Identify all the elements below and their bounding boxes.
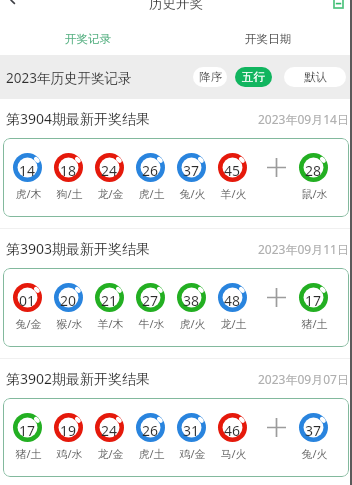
staticText: 46 [224,421,241,440]
button[interactable]: 开奖日期 [176,22,352,55]
staticText: 默认 [304,70,327,84]
staticText: 虎/土 [138,186,165,201]
staticText: 虎/土 [138,446,165,461]
staticText: 马/火 [220,446,247,461]
button[interactable]: Calendar [334,0,343,8]
button[interactable]: 17 [3,398,349,477]
staticText: 38 [183,291,200,310]
button[interactable]: Back [0,0,29,11]
staticText: 龙/金 [97,446,124,461]
staticText: 28 [305,161,322,180]
staticText: 17 [19,421,36,440]
staticText: 第3903期最新开奖结果 [6,239,151,258]
staticText: 19 [60,421,77,440]
button[interactable]: 开奖记录 [0,22,176,55]
staticText: 第3904期最新开奖结果 [6,109,151,128]
staticText: 20 [60,291,77,310]
staticText: 37 [183,161,200,180]
staticText: 狗/土 [56,186,83,201]
staticText: 龙/金 [97,186,124,201]
staticText: 2023年09月07日 [258,371,349,387]
staticText: 猪/土 [301,316,328,331]
staticText: 24 [101,421,118,440]
staticText: 开奖日期 [245,32,291,46]
staticText: 2023年09月14日 [258,111,349,127]
button[interactable]: 默认 [284,67,346,87]
staticText: 21 [101,291,118,310]
staticText: 48 [224,291,241,310]
staticText: 历史开奖 [149,0,203,12]
staticText: 31 [183,421,200,440]
staticText: 鸡/金 [179,446,206,461]
staticText: 26 [142,161,159,180]
staticText: 第3902期最新开奖结果 [6,369,151,388]
staticText: 鸡/水 [56,446,83,461]
staticText: 2023年历史开奖记录 [6,69,132,87]
staticText: 羊/木 [97,316,124,331]
staticText: 五行 [242,70,265,84]
button[interactable]: 14 [3,138,349,217]
staticText: 猴/水 [56,316,83,331]
staticText: 24 [101,161,118,180]
staticText: 兔/火 [301,446,328,461]
staticText: 27 [142,291,159,310]
staticText: 45 [224,161,241,180]
staticText: 猪/土 [15,446,42,461]
staticText: 01 [19,291,36,310]
staticText: 兔/金 [15,316,42,331]
button[interactable]: 降序 [193,67,227,87]
staticText: 牛/水 [138,316,165,331]
staticText: 14 [19,161,36,180]
staticText: 2023年09月11日 [258,241,349,257]
staticText: 兔/火 [179,186,206,201]
staticText: 17 [305,291,322,310]
button[interactable]: 五行 [235,67,272,87]
staticText: 18 [60,161,77,180]
staticText: 鼠/水 [301,186,328,201]
button[interactable]: 01 [3,268,349,347]
staticText: 虎/火 [179,316,206,331]
staticText: 37 [305,421,322,440]
staticText: 开奖记录 [65,32,111,46]
staticText: 羊/火 [220,186,247,201]
staticText: 龙/土 [220,316,247,331]
staticText: 降序 [199,70,222,84]
staticText: 虎/木 [15,186,42,201]
staticText: 26 [142,421,159,440]
